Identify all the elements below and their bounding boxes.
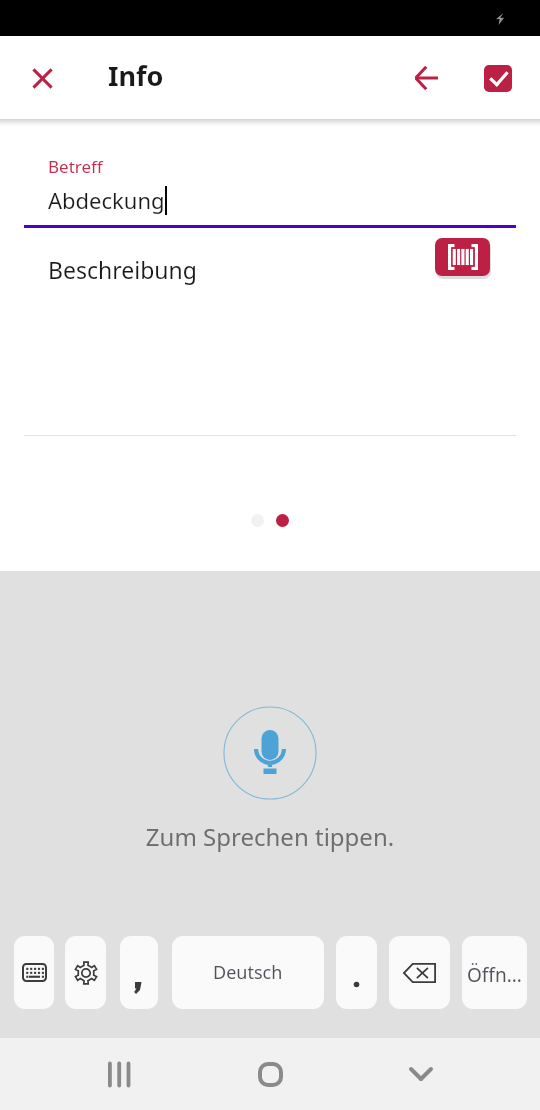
- other: Comma: [120, 936, 158, 1009]
- button[interactable]: Close: [16, 52, 68, 104]
- staticText: Info: [108, 57, 164, 94]
- staticText: Zum Sprechen tippen.: [0, 820, 540, 853]
- button[interactable]: Back: [400, 52, 452, 104]
- button[interactable]: Scan barcode: [435, 238, 490, 276]
- button[interactable]: Backspace: [389, 936, 450, 1009]
- button[interactable]: Tap to speak: [223, 706, 317, 800]
- button[interactable]: Recents: [83, 1038, 155, 1110]
- staticText: Abdeckung: [48, 185, 165, 215]
- other: Backspace: [403, 963, 436, 983]
- other: Keyboard: [22, 963, 47, 982]
- staticText: Beschreibung: [48, 254, 197, 285]
- staticText: Öffn...: [467, 962, 522, 988]
- button[interactable]: Deutsch: [172, 936, 324, 1009]
- button[interactable]: Settings: [65, 936, 106, 1009]
- staticText: Deutsch: [213, 960, 283, 985]
- staticText: Betreff: [48, 155, 103, 178]
- other: Period: [336, 936, 377, 1009]
- button[interactable]: Comma: [120, 936, 158, 1009]
- button[interactable]: Period: [336, 936, 377, 1009]
- other: Settings: [74, 961, 98, 985]
- button[interactable]: Confirm: [472, 52, 524, 104]
- button[interactable]: Öffn...: [462, 936, 527, 1009]
- button[interactable]: Keyboard: [14, 936, 54, 1009]
- button[interactable]: Hide keyboard: [385, 1038, 457, 1110]
- button[interactable]: Home: [234, 1038, 306, 1110]
